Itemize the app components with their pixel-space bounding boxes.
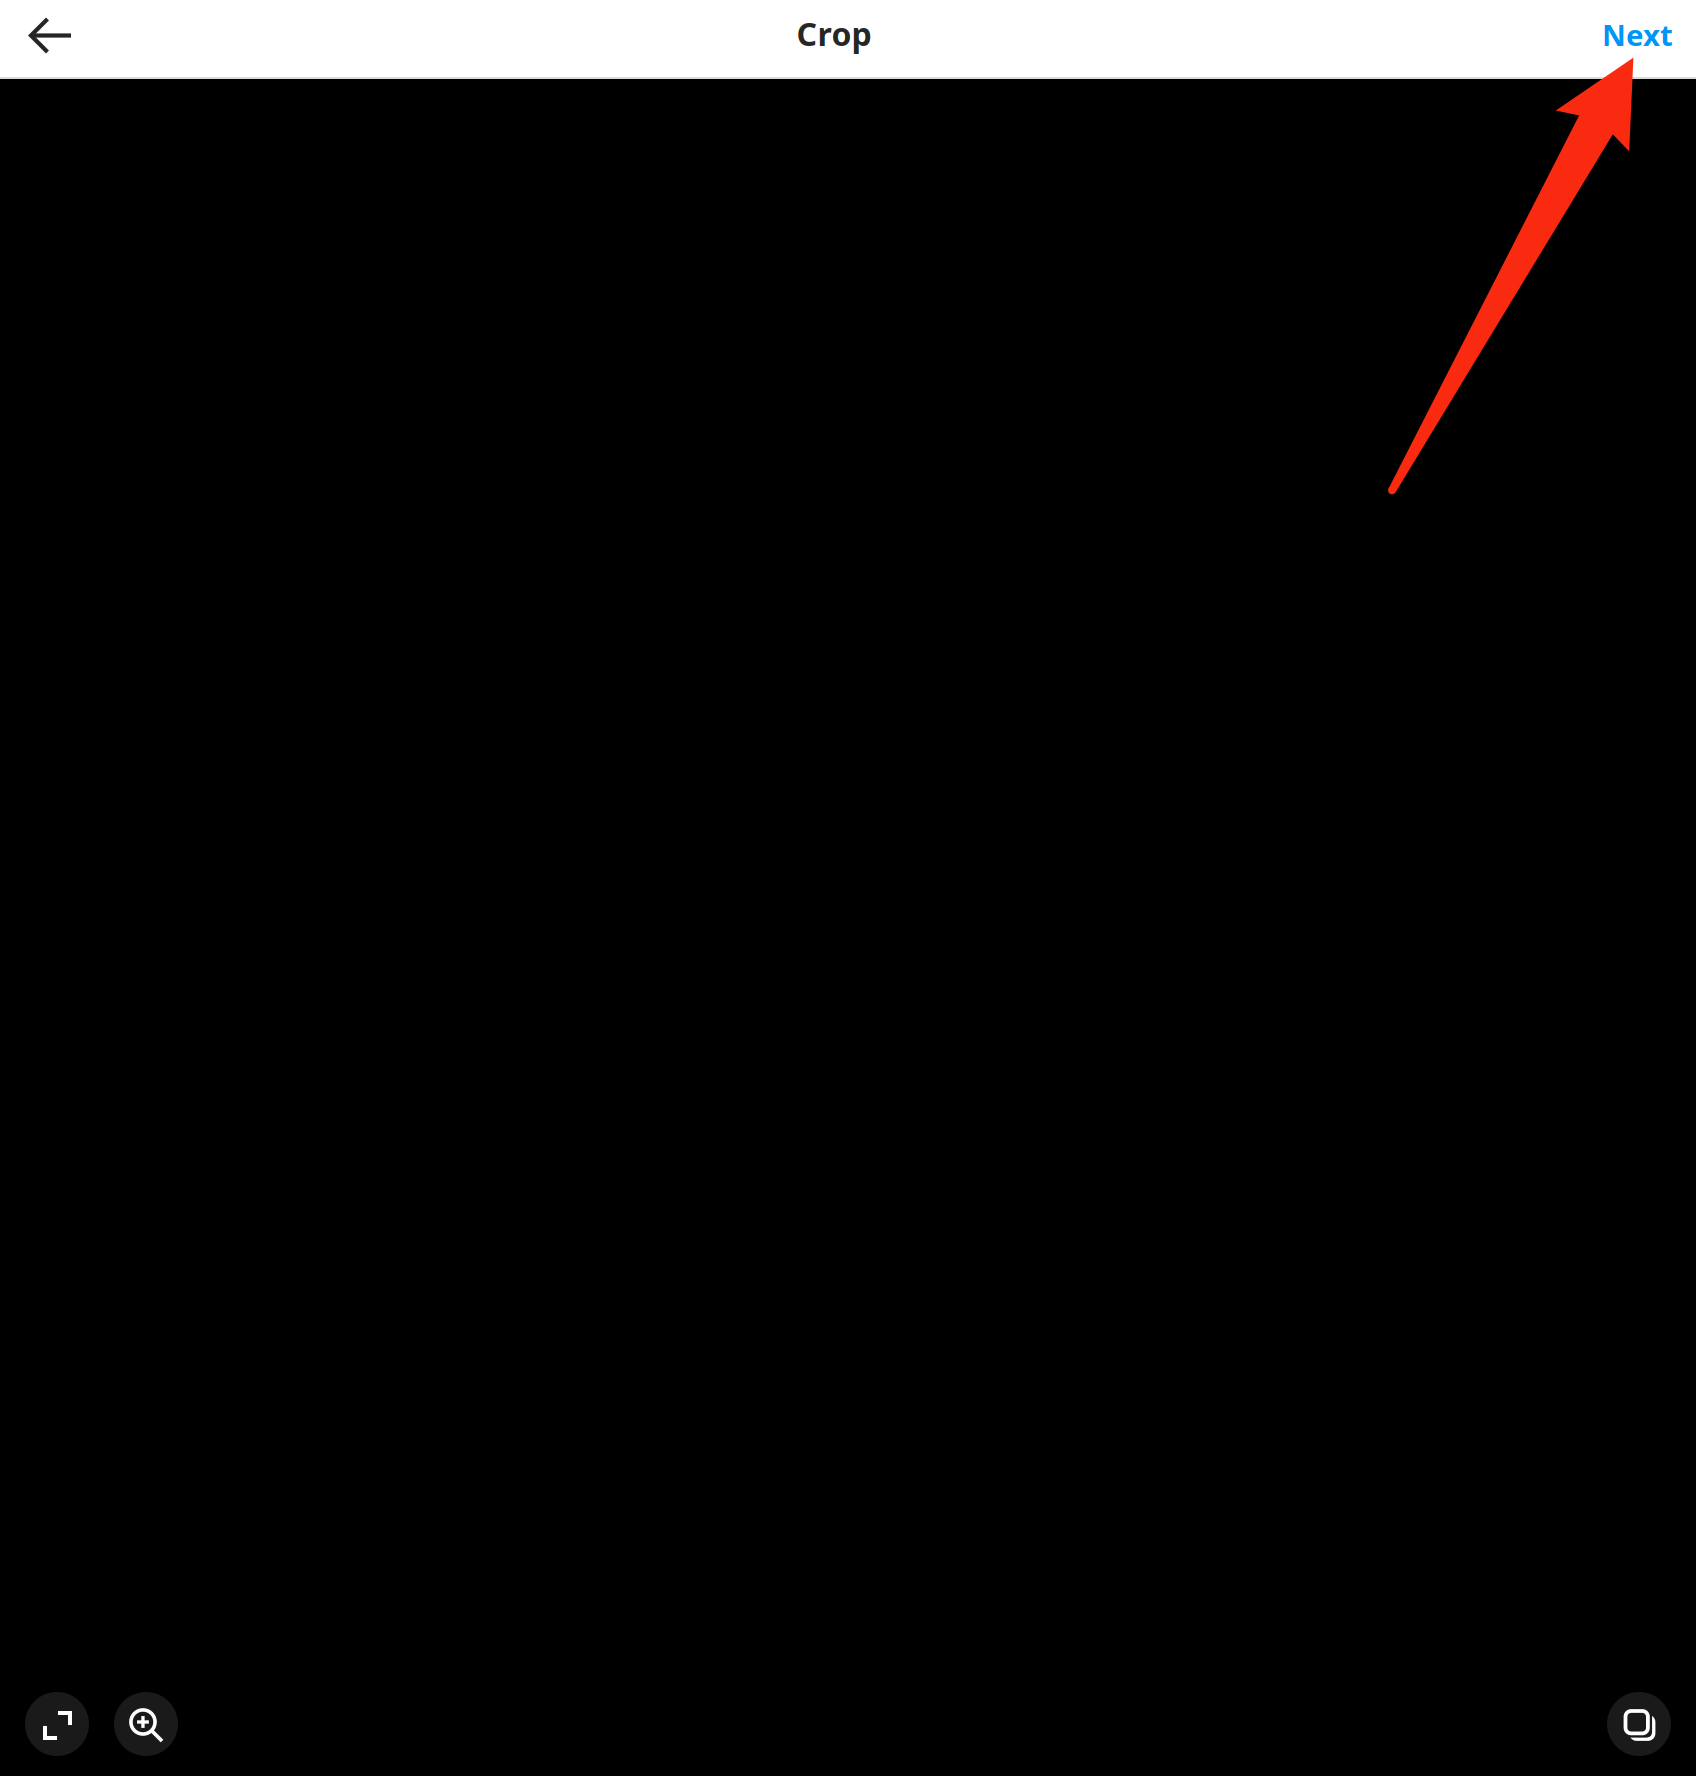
button[interactable]: Back <box>0 0 98 77</box>
button[interactable]: Zoom in <box>114 1692 178 1756</box>
button[interactable]: Select multiple <box>1607 1692 1671 1756</box>
button[interactable]: Fit <box>25 1692 89 1756</box>
staticText: Next <box>1602 15 1673 54</box>
button[interactable]: Next <box>1572 0 1696 77</box>
staticText: Crop <box>796 12 871 55</box>
